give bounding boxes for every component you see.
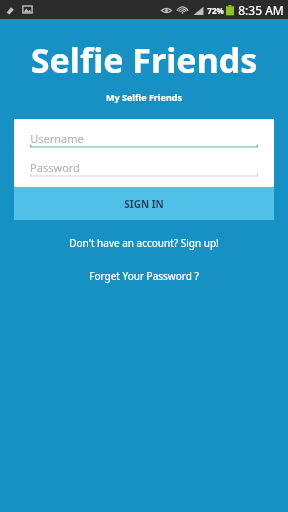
- staticText: Username: [30, 131, 84, 146]
- button[interactable]: Don't have an account? Sign up!: [0, 233, 288, 253]
- button[interactable]: SIGN IN: [14, 187, 274, 220]
- staticText: 8:35 AM: [238, 2, 284, 18]
- button[interactable]: Forget Your Password ?: [0, 266, 288, 286]
- staticText: Password: [30, 160, 80, 175]
- staticText: Selfie Friends: [0, 37, 288, 83]
- staticText: Forget Your Password ?: [89, 269, 199, 283]
- staticText: Don't have an account? Sign up!: [69, 236, 219, 250]
- button[interactable]: Password: [30, 159, 258, 177]
- staticText: My Selfie Friends: [0, 91, 288, 103]
- button[interactable]: Username: [30, 130, 258, 148]
- staticText: SIGN IN: [124, 197, 164, 211]
- staticText: 72%: [207, 5, 224, 16]
